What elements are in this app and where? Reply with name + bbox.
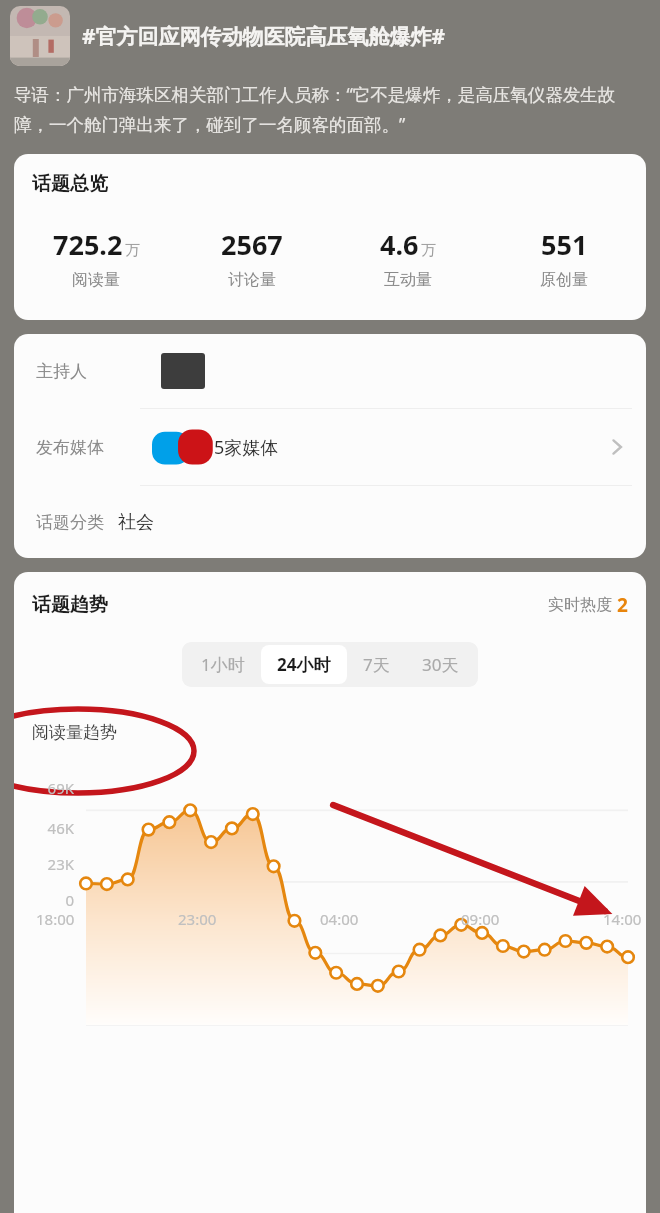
staticText: 1小时: [201, 653, 245, 676]
staticText: 0: [20, 890, 74, 910]
button[interactable]: 4.6: [330, 226, 486, 290]
staticText: 话题分类: [36, 512, 104, 533]
staticText: 30天: [422, 653, 459, 676]
staticText: 04:00: [320, 909, 359, 929]
button[interactable]: 725.2: [18, 226, 174, 290]
staticText: 23K: [20, 854, 74, 874]
button[interactable]: 发布媒体: [14, 409, 646, 485]
staticText: 23:00: [178, 909, 217, 929]
button[interactable]: 主持人: [14, 334, 646, 408]
staticText: 46K: [20, 818, 74, 838]
staticText: 话题总览: [32, 172, 108, 196]
staticText: 导语：广州市海珠区相关部门工作人员称：“它不是爆炸，是高压氧仪器发生故障，一个舱…: [14, 82, 646, 136]
button[interactable]: 7天: [347, 645, 406, 684]
staticText: 社会: [118, 511, 154, 534]
button[interactable]: 24小时: [261, 645, 347, 684]
staticText: 69K: [20, 778, 74, 798]
button[interactable]: 实时热度: [548, 592, 628, 618]
button[interactable]: 2567: [174, 226, 330, 290]
other: 查看发布媒体: [606, 436, 628, 458]
staticText: 主持人: [36, 361, 87, 382]
button[interactable]: 551: [486, 226, 642, 290]
staticText: #官方回应网传动物医院高压氧舱爆炸#: [82, 22, 446, 51]
staticText: 实时热度: [548, 595, 612, 615]
button[interactable]: 话题分类: [14, 486, 646, 558]
staticText: 7天: [363, 653, 390, 676]
staticText: 725.2: [53, 226, 123, 263]
staticText: 万: [421, 241, 436, 260]
staticText: 互动量: [384, 270, 432, 290]
staticText: 14:00: [603, 909, 642, 929]
staticText: 话题趋势: [32, 593, 108, 617]
button[interactable]: 1小时: [185, 645, 261, 684]
staticText: 2567: [221, 226, 283, 263]
staticText: 4.6: [380, 226, 419, 263]
staticText: 5家媒体: [214, 435, 279, 460]
staticText: 讨论量: [228, 270, 276, 290]
staticText: 原创量: [540, 270, 588, 290]
staticText: 24小时: [277, 653, 331, 676]
staticText: 2: [617, 592, 628, 618]
staticText: 18:00: [36, 909, 75, 929]
staticText: 阅读量趋势: [32, 722, 117, 743]
button[interactable]: 30天: [406, 645, 475, 684]
staticText: 09:00: [461, 909, 500, 929]
staticText: 551: [541, 226, 588, 263]
staticText: 万: [125, 241, 140, 260]
staticText: 阅读量: [72, 270, 120, 290]
staticText: 发布媒体: [36, 437, 104, 458]
